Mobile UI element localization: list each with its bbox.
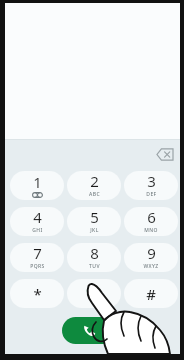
staticText: GHI [32, 227, 43, 234]
button[interactable]: Call [62, 317, 116, 344]
staticText: TUV [89, 263, 100, 270]
button[interactable]: # [124, 279, 178, 308]
staticText: JKL [90, 227, 99, 234]
staticText: 8 [90, 243, 99, 263]
staticText: 0 [90, 279, 99, 299]
button[interactable]: 7 [10, 243, 64, 272]
staticText: 3 [147, 171, 156, 191]
button[interactable]: 4 [10, 207, 64, 236]
staticText: 9 [147, 243, 156, 263]
button[interactable]: * [10, 279, 64, 308]
button[interactable]: 8 [67, 243, 121, 272]
staticText: DEF [146, 191, 157, 198]
staticText: 7 [33, 243, 42, 263]
button[interactable]: 9 [124, 243, 178, 272]
staticText: PQRS [30, 263, 45, 270]
button[interactable]: 0 [67, 279, 121, 308]
staticText: # [146, 284, 156, 304]
staticText: 5 [90, 207, 99, 227]
button[interactable]: 6 [124, 207, 178, 236]
button[interactable]: 1 [10, 171, 64, 200]
button[interactable]: 2 [67, 171, 121, 200]
staticText: ABC [89, 191, 100, 198]
staticText: 1 [33, 172, 42, 192]
staticText: 4 [33, 207, 42, 227]
staticText: WXYZ [143, 263, 159, 270]
button[interactable]: 5 [67, 207, 121, 236]
staticText: * [33, 284, 42, 304]
staticText: MNO [144, 227, 158, 234]
staticText: 6 [147, 207, 156, 227]
button[interactable]: Backspace [154, 146, 176, 162]
button[interactable]: 3 [124, 171, 178, 200]
staticText: 2 [90, 171, 99, 191]
staticText: + [93, 299, 97, 306]
